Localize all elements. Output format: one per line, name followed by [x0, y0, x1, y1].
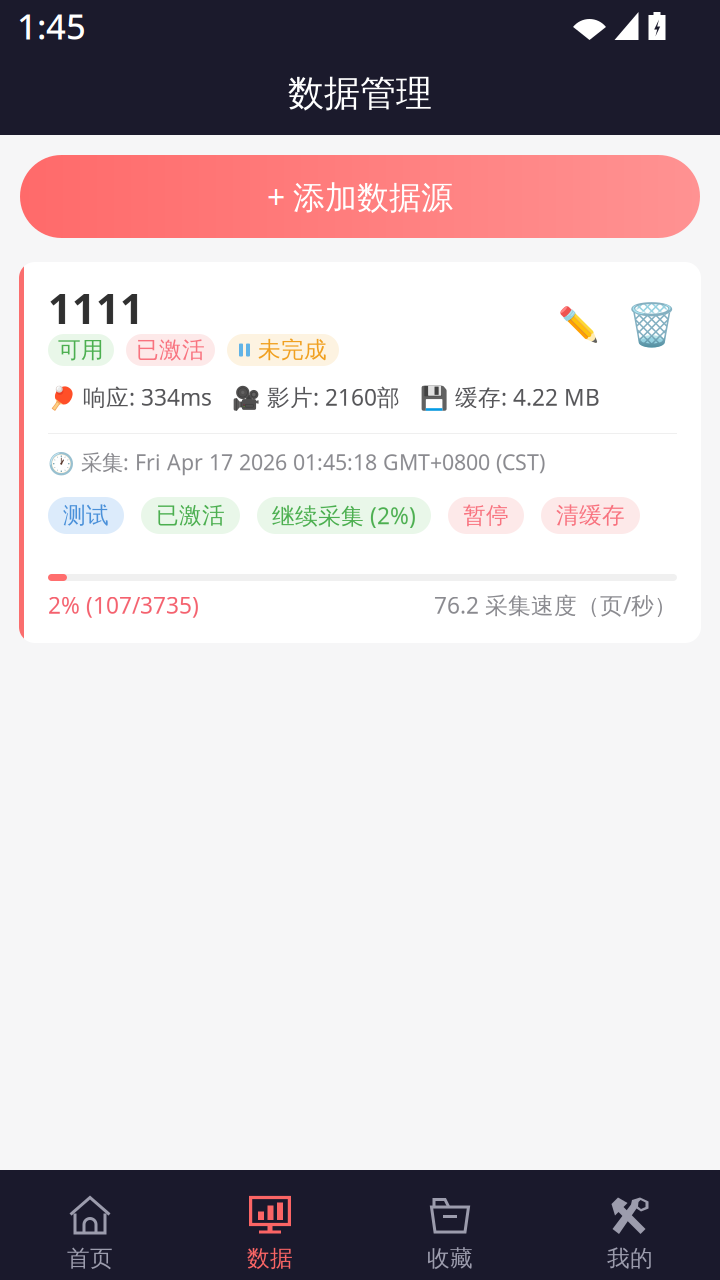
button[interactable]: 清缓存 — [541, 497, 640, 534]
button[interactable]: 测试 — [48, 497, 124, 534]
staticText: 未完成 — [258, 336, 327, 364]
button[interactable]: 暂停 — [448, 497, 524, 534]
staticText: 2% (107/3735) — [48, 590, 199, 620]
staticText: 已激活 — [156, 502, 225, 529]
button[interactable]: 已激活 — [141, 497, 240, 534]
button[interactable]: 删除 — [626, 304, 677, 346]
staticText: 数据 — [247, 1245, 293, 1272]
staticText: 暂停 — [463, 502, 509, 529]
staticText: 数据管理 — [288, 71, 432, 116]
staticText: 🗑️ — [626, 301, 677, 349]
staticText: 🏓 响应: 334ms — [48, 382, 212, 412]
staticText: 1111 — [48, 281, 144, 335]
staticText: ✏️ — [558, 306, 600, 344]
staticText: 首页 — [67, 1245, 113, 1272]
button[interactable]: 我的 — [540, 1172, 720, 1277]
button[interactable]: + 添加数据源 — [20, 155, 700, 238]
staticText: 测试 — [63, 502, 109, 529]
staticText: 1:45 — [17, 3, 86, 49]
staticText: 收藏 — [427, 1245, 473, 1272]
staticText: 我的 — [607, 1245, 653, 1272]
staticText: 🎥 影片: 2160部 — [232, 382, 400, 412]
button[interactable]: 编辑 — [558, 304, 600, 346]
staticText: 清缓存 — [556, 502, 625, 529]
button[interactable]: 收藏 — [360, 1172, 540, 1277]
staticText: 💾 缓存: 4.22 MB — [420, 382, 600, 412]
staticText: 可用 — [58, 336, 104, 364]
staticText: 🕐 采集: Fri Apr 17 2026 01:45:18 GMT+0800 … — [48, 448, 545, 476]
staticText: 76.2 采集速度（页/秒） — [434, 590, 677, 620]
staticText: 已激活 — [136, 336, 205, 364]
button[interactable]: 继续采集 (2%) — [257, 497, 431, 534]
button[interactable]: 首页 — [0, 1172, 180, 1277]
staticText: 继续采集 (2%) — [272, 500, 416, 530]
button[interactable]: 数据 — [180, 1172, 360, 1277]
staticText: + 添加数据源 — [267, 175, 453, 218]
